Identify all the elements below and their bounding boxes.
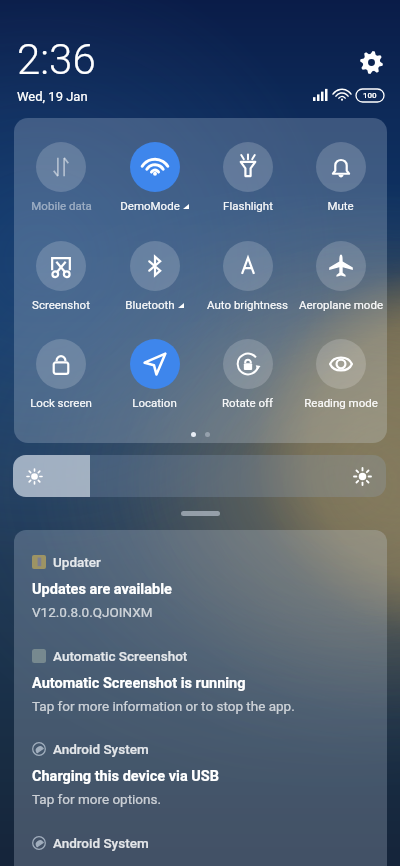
button[interactable]: Updater (14, 530, 387, 624)
button[interactable]: Rotate off (201, 339, 294, 411)
staticText: Updates are available (32, 581, 172, 598)
button[interactable]: Mobile data (14, 142, 108, 214)
button[interactable]: Location (108, 339, 201, 411)
staticText: Rotate off (222, 396, 273, 409)
staticText: Bluetooth (125, 298, 175, 311)
staticText: Android System (53, 741, 149, 757)
staticText: DemoMode (120, 199, 180, 212)
staticText: Tap for more information or to stop the … (32, 698, 295, 714)
button[interactable]: Screenshot (14, 241, 108, 313)
button[interactable]: DemoMode (108, 142, 201, 214)
button[interactable]: Lock screen (14, 339, 108, 411)
staticText: Reading mode (304, 396, 378, 409)
button[interactable]: Mute (294, 142, 387, 214)
staticText: Tap for more options. (32, 791, 162, 807)
staticText: 100 (363, 91, 377, 100)
staticText: Mute (327, 199, 354, 212)
button[interactable]: Brightness (13, 455, 386, 497)
staticText: Android System (53, 835, 149, 851)
staticText: 2:36 (17, 35, 96, 84)
staticText: Automatic Screenshot is running (32, 675, 246, 692)
staticText: V12.0.8.0.QJOINXM (32, 604, 153, 620)
button[interactable]: Automatic Screenshot (14, 624, 387, 718)
staticText: Wed, 19 Jan (17, 89, 88, 104)
staticText: Lock screen (30, 396, 92, 409)
staticText: Aeroplane mode (299, 298, 383, 311)
staticText: Screenshot (32, 298, 90, 311)
button[interactable]: Auto brightness (201, 241, 294, 313)
staticText: Updater (53, 554, 101, 570)
staticText: Automatic Screenshot (53, 648, 188, 664)
staticText: Flashlight (223, 199, 273, 212)
staticText: Charging this device via USB (32, 768, 220, 785)
button[interactable]: Flashlight (201, 142, 294, 214)
staticText: Mobile data (31, 199, 92, 212)
staticText: Location (132, 396, 177, 409)
button[interactable]: Aeroplane mode (294, 241, 387, 313)
button[interactable]: Android System (14, 717, 387, 811)
button[interactable]: Reading mode (294, 339, 387, 411)
button[interactable]: Android System (14, 811, 387, 866)
button[interactable]: Bluetooth (108, 241, 201, 313)
button[interactable]: Settings (356, 47, 386, 77)
staticText: Auto brightness (207, 298, 288, 311)
